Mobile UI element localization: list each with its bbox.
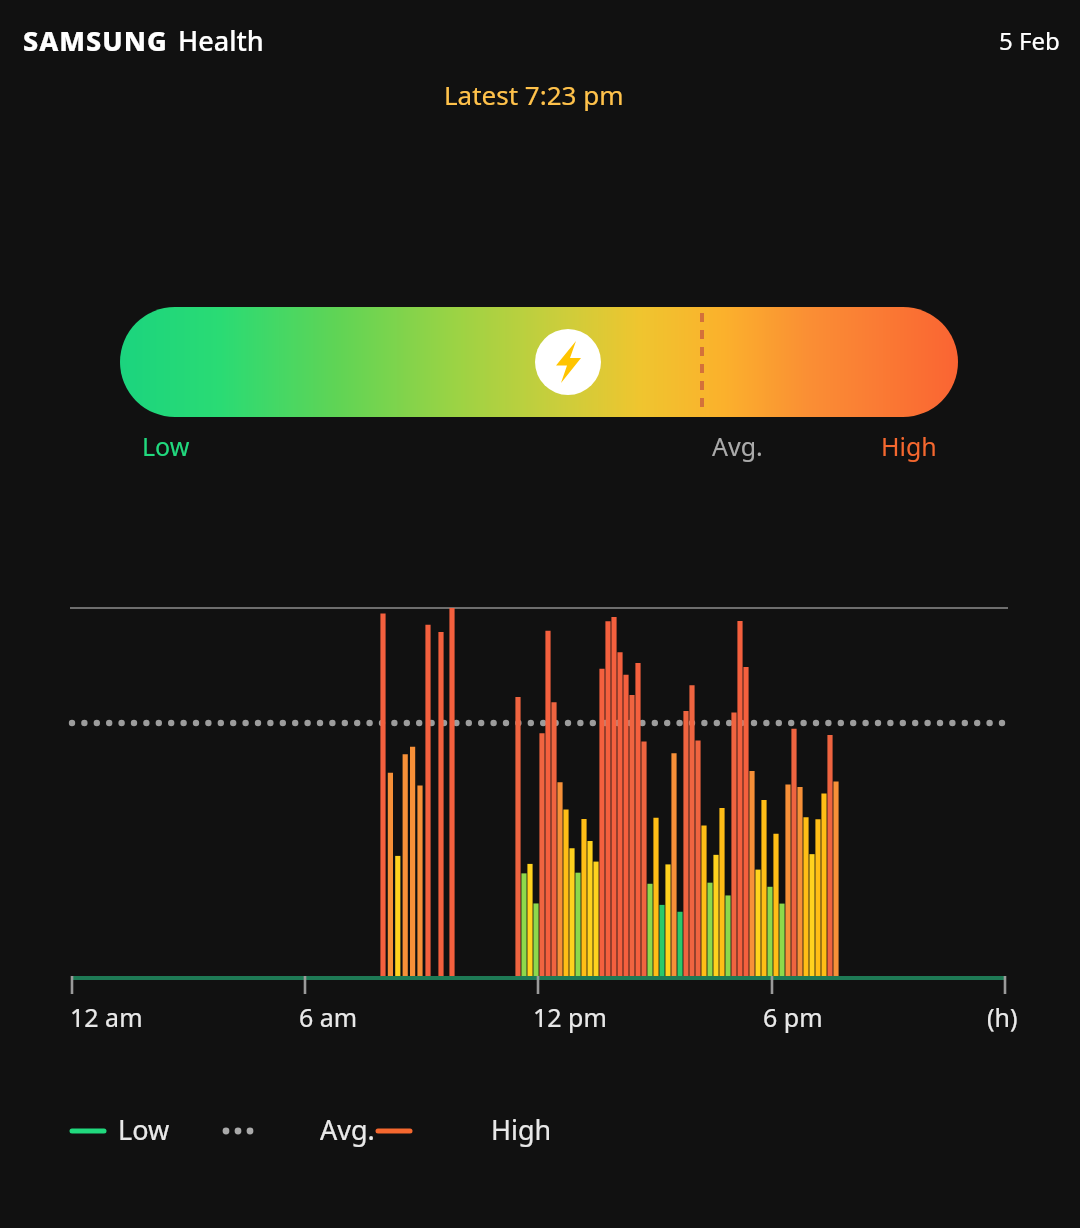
button[interactable]: Low — [118, 1111, 170, 1148]
staticText: Low — [142, 429, 190, 463]
staticText: 5 Feb — [999, 24, 1060, 57]
staticText: Avg. — [320, 1111, 375, 1148]
staticText: High — [881, 429, 937, 463]
staticText: SAMSUNG — [23, 22, 168, 59]
staticText: High — [491, 1111, 552, 1148]
staticText: Avg. — [712, 429, 763, 463]
button[interactable]: Energy score chart — [0, 0, 1080, 1228]
staticText: 12 am — [70, 1000, 143, 1034]
staticText: Health — [178, 22, 264, 59]
staticText: (h) — [987, 1000, 1018, 1034]
staticText: 6 pm — [763, 1000, 823, 1034]
button[interactable]: SAMSUNG — [23, 22, 1060, 59]
staticText: 12 pm — [533, 1000, 607, 1034]
staticText: Low — [118, 1111, 170, 1148]
staticText: 6 am — [299, 1000, 358, 1034]
button[interactable]: High — [491, 1111, 552, 1148]
staticText: Latest 7:23 pm — [444, 77, 624, 112]
button[interactable]: Avg. — [320, 1111, 375, 1148]
